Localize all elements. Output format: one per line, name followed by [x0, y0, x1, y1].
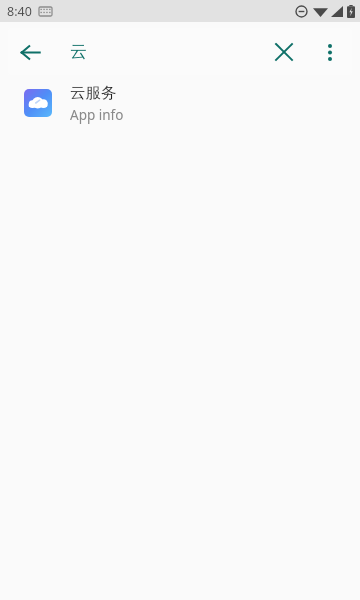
button[interactable]: More options	[312, 34, 348, 70]
staticText: 云	[70, 41, 87, 62]
staticText: 8:40	[7, 3, 32, 20]
button[interactable]: 云服务	[0, 75, 360, 131]
staticText: App info	[70, 106, 124, 124]
button[interactable]: Clear	[262, 30, 306, 74]
staticText: 云服务	[70, 83, 117, 103]
button[interactable]: Back	[8, 30, 52, 74]
